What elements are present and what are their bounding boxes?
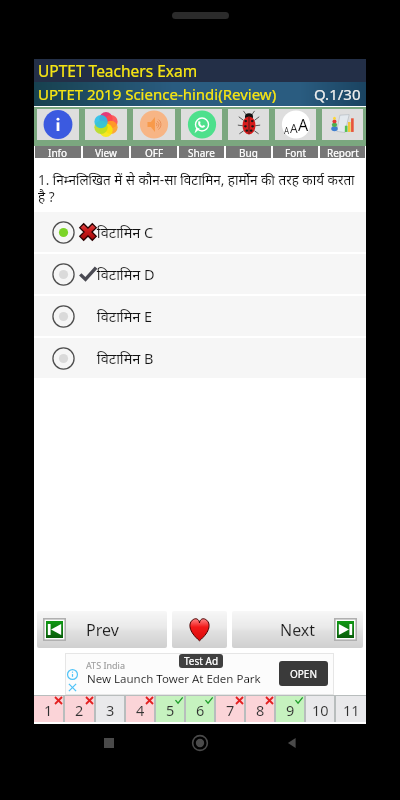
- staticText: 1: [44, 700, 53, 720]
- button[interactable]: OFF: [133, 109, 175, 140]
- staticText: विटामिन E: [97, 306, 153, 326]
- button[interactable]: 1: [34, 696, 63, 722]
- button[interactable]: Font: [275, 109, 316, 140]
- button[interactable]: Back: [275, 726, 309, 760]
- staticText: View: [95, 146, 117, 158]
- button[interactable]: Bug: [228, 109, 269, 140]
- staticText: OPEN: [290, 667, 318, 681]
- button[interactable]: 4: [126, 696, 154, 722]
- button[interactable]: Recents: [92, 726, 126, 760]
- staticText: 10: [312, 700, 329, 720]
- button[interactable]: Home: [183, 726, 217, 760]
- staticText: UPTET Teachers Exam: [38, 60, 198, 81]
- button[interactable]: 2: [65, 696, 94, 722]
- button[interactable]: ATS India: [65, 653, 334, 695]
- staticText: 11: [343, 700, 360, 720]
- staticText: A: [298, 114, 309, 136]
- button[interactable]: Share: [179, 146, 224, 158]
- staticText: 4: [136, 700, 145, 720]
- staticText: UPTET 2019 Science-hindi(Review): [38, 84, 277, 104]
- staticText: 7: [226, 700, 235, 720]
- staticText: Next: [280, 619, 316, 641]
- button[interactable]: विटामिन C: [34, 212, 366, 252]
- button[interactable]: Info: [35, 146, 81, 158]
- button[interactable]: Report: [322, 109, 363, 140]
- button[interactable]: Bug: [226, 146, 271, 158]
- button[interactable]: 7: [216, 696, 244, 722]
- staticText: Bug: [239, 146, 258, 158]
- button[interactable]: 5: [156, 696, 184, 722]
- button[interactable]: Report: [320, 146, 365, 158]
- button[interactable]: विटामिन D: [34, 254, 366, 294]
- staticText: विटामिन D: [97, 264, 155, 284]
- staticText: 1. निम्नलिखित में से कौन-सा विटामिन, हार…: [38, 171, 365, 206]
- staticText: 6: [196, 700, 205, 720]
- button[interactable]: View: [85, 109, 127, 140]
- button[interactable]: Font: [273, 146, 318, 158]
- staticText: New Launch Tower At Eden Park: [87, 671, 261, 687]
- staticText: विटामिन C: [97, 222, 154, 242]
- button[interactable]: 3: [96, 696, 124, 722]
- staticText: 9: [286, 700, 295, 720]
- staticText: 8: [256, 700, 265, 720]
- button[interactable]: Prev: [37, 611, 167, 648]
- button[interactable]: OFF: [131, 146, 177, 158]
- button[interactable]: 9: [276, 696, 304, 722]
- button[interactable]: OPEN: [279, 661, 328, 686]
- staticText: ATS India: [86, 659, 125, 671]
- button[interactable]: Share: [181, 109, 222, 140]
- button[interactable]: 11: [336, 696, 366, 722]
- staticText: Q.1/30: [314, 84, 361, 104]
- button[interactable]: विटामिन E: [34, 296, 366, 336]
- button[interactable]: 6: [186, 696, 214, 722]
- staticText: Share: [188, 146, 215, 158]
- staticText: Report: [327, 146, 359, 158]
- staticText: 5: [166, 700, 175, 720]
- button[interactable]: विटामिन B: [34, 338, 366, 378]
- staticText: Font: [285, 146, 307, 158]
- staticText: 2: [75, 700, 84, 720]
- staticText: Test Ad: [184, 654, 219, 668]
- button[interactable]: Favourite: [172, 611, 227, 648]
- button[interactable]: 8: [246, 696, 274, 722]
- staticText: 3: [106, 700, 115, 720]
- button[interactable]: Info: [37, 109, 79, 140]
- button[interactable]: 10: [306, 696, 334, 722]
- staticText: Prev: [86, 619, 119, 641]
- staticText: A: [290, 120, 298, 136]
- button[interactable]: View: [83, 146, 129, 158]
- button[interactable]: Next: [232, 611, 363, 648]
- staticText: Info: [48, 146, 68, 158]
- staticText: विटामिन B: [97, 348, 154, 368]
- staticText: A: [284, 125, 290, 136]
- staticText: OFF: [145, 146, 164, 158]
